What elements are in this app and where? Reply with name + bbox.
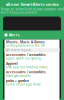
staticText: apple watch not syncing	[6, 57, 41, 60]
staticText: home depot app down	[6, 83, 41, 86]
staticText: Movies, Music & Games	[6, 40, 45, 44]
staticText: fitbit sync trouble	[6, 74, 31, 77]
staticText: netflix problems in the UK	[6, 44, 45, 47]
staticText: all-new SmartAlerts service	[5, 1, 58, 7]
staticText: Apparel	[6, 62, 18, 65]
button[interactable]: patio + garden	[4, 78, 59, 87]
button[interactable]: Apparel	[4, 61, 59, 70]
staticText: nike app not loading today	[6, 66, 47, 69]
staticText: accessories / wearables	[6, 70, 46, 74]
staticText: All recent reports	[6, 49, 31, 52]
staticText: Alerts	[9, 33, 20, 37]
button[interactable]: Movies, Music & Games	[4, 39, 59, 48]
staticText: Know as what kind of app outages and we'…	[0, 7, 63, 14]
staticText: accessories / wearables	[6, 53, 46, 56]
staticText: patio + garden	[6, 79, 29, 82]
button[interactable]: accessories / wearables	[4, 52, 59, 61]
button[interactable]: accessories / wearables	[4, 70, 59, 78]
